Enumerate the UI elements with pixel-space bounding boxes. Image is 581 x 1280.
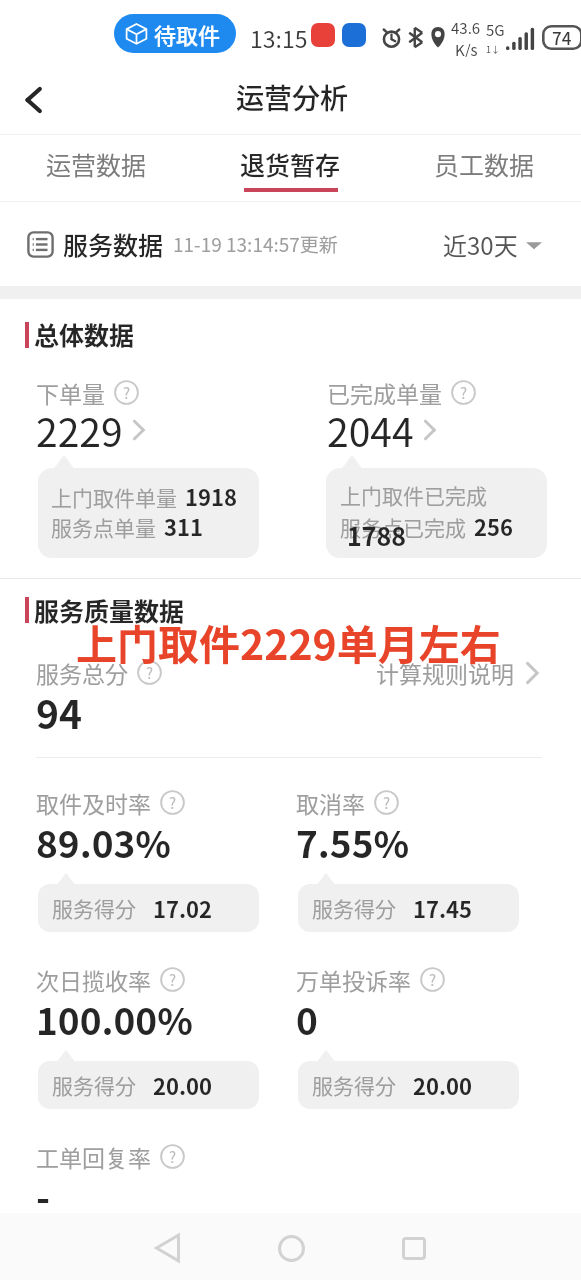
button[interactable]: 2229 xyxy=(36,402,145,458)
staticText: 万单投诉率 xyxy=(296,963,411,996)
staticText: 运营分析 xyxy=(236,77,349,118)
staticText: 上门取件单量 xyxy=(51,482,177,512)
staticText: 100.00% xyxy=(36,992,193,1046)
staticText: ? xyxy=(429,969,437,991)
button[interactable] xyxy=(298,1061,519,1109)
staticText: 已完成单量 xyxy=(327,376,442,409)
staticText: 待取件 xyxy=(154,18,221,50)
staticText: 2229 xyxy=(36,402,123,458)
staticText: 计算规则说明 xyxy=(376,656,514,689)
staticText: 13:15 xyxy=(250,21,308,54)
staticText: 2044 xyxy=(327,402,414,458)
staticText: 近30天 xyxy=(443,227,518,262)
staticText: ? xyxy=(169,969,177,991)
staticText: 上门取件已完成 xyxy=(340,480,487,510)
staticText: 工单回复率 xyxy=(36,1140,151,1173)
staticText: 服务得分 xyxy=(312,1070,396,1100)
button[interactable]: Back xyxy=(138,1219,196,1277)
staticText: 94 xyxy=(36,684,83,740)
staticText: 311 xyxy=(164,510,203,542)
staticText: 0 xyxy=(296,992,318,1046)
button[interactable]: Back xyxy=(10,77,56,123)
staticText: 服务总分 xyxy=(36,656,128,689)
staticText: 次日揽收率 xyxy=(36,963,151,996)
staticText: 89.03% xyxy=(36,815,171,869)
staticText: - xyxy=(36,1168,51,1223)
button[interactable]: Recent apps xyxy=(385,1219,443,1277)
staticText: 总体数据 xyxy=(34,316,135,352)
staticText: ? xyxy=(383,792,391,814)
staticText: ? xyxy=(169,792,177,814)
staticText: 17.02 xyxy=(153,892,213,924)
staticText: 退货暂存 xyxy=(240,146,341,182)
staticText: 下单量 xyxy=(36,376,105,409)
staticText: 员工数据 xyxy=(434,146,535,182)
button[interactable] xyxy=(38,1061,259,1109)
staticText: 74 xyxy=(552,25,572,50)
button[interactable]: 员工数据 xyxy=(387,127,581,194)
staticText: K/s xyxy=(455,39,478,57)
staticText: 1↓ xyxy=(486,43,500,56)
button[interactable]: 近30天 xyxy=(443,227,542,262)
staticText: 5G xyxy=(486,19,505,41)
staticText: 服务点已完成 xyxy=(340,512,466,542)
staticText: 服务得分 xyxy=(52,893,136,923)
staticText: 服务点单量 xyxy=(51,512,156,542)
staticText: 服务得分 xyxy=(52,1070,136,1100)
staticText: ? xyxy=(123,382,131,404)
button[interactable]: 2044 xyxy=(327,402,436,458)
staticText: 取消率 xyxy=(296,786,365,819)
staticText: 取件及时率 xyxy=(36,786,151,819)
staticText: 服务质量数据 xyxy=(34,592,185,628)
button[interactable]: Pending pickup xyxy=(125,14,221,53)
button[interactable]: 运营数据 xyxy=(0,127,193,194)
staticText: 1788 xyxy=(347,517,407,553)
staticText: 43.6 xyxy=(451,17,481,39)
staticText: 1918 xyxy=(185,480,237,512)
button[interactable] xyxy=(298,884,519,932)
staticText: ? xyxy=(460,382,468,404)
staticText: ? xyxy=(169,1146,177,1168)
staticText: 17.45 xyxy=(413,892,473,924)
staticText: 11-19 13:14:57更新 xyxy=(173,230,338,258)
staticText: 20.00 xyxy=(153,1069,213,1101)
staticText: 7.55% xyxy=(296,815,410,869)
staticText: 20.00 xyxy=(413,1069,473,1101)
staticText: 上门取件2229单月左右 xyxy=(76,612,501,671)
staticText: ? xyxy=(146,662,154,684)
button[interactable]: 计算规则说明 xyxy=(376,656,539,689)
staticText: 256 xyxy=(474,510,513,542)
button[interactable]: 退货暂存 xyxy=(193,127,387,194)
staticText: 服务数据 xyxy=(63,226,164,262)
button[interactable] xyxy=(38,884,259,932)
button[interactable]: Home xyxy=(262,1219,320,1277)
staticText: 服务得分 xyxy=(312,893,396,923)
staticText: 运营数据 xyxy=(46,146,147,182)
